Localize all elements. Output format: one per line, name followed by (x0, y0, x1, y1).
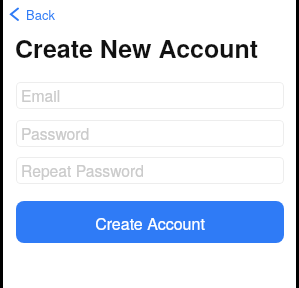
staticText: Create Account (95, 212, 205, 235)
button[interactable]: Create Account (16, 201, 284, 243)
staticText: Repeat Password (21, 159, 145, 181)
staticText: Email (21, 84, 61, 106)
staticText: Password (21, 122, 90, 144)
button[interactable]: Back (7, 3, 55, 25)
button[interactable]: Repeat Password (16, 157, 284, 184)
staticText: Create New Account (15, 30, 259, 66)
staticText: Back (26, 5, 55, 24)
button[interactable]: Email (16, 82, 284, 109)
button[interactable]: Password (16, 120, 284, 147)
